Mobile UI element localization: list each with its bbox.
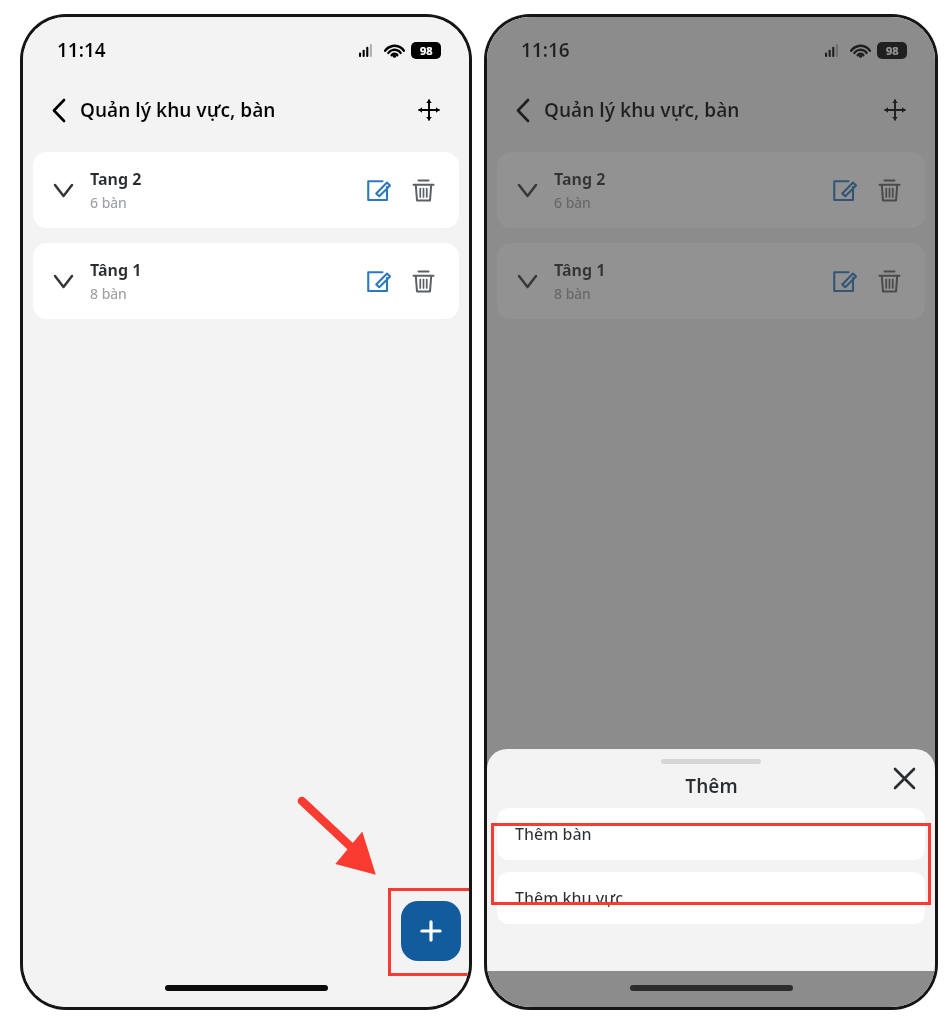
staticText: Thêm bàn xyxy=(515,823,592,845)
staticText: 8 bàn xyxy=(90,284,127,303)
button[interactable]: Quay lại xyxy=(501,88,545,132)
button[interactable]: Tang 2 xyxy=(33,152,459,228)
staticText: Tâng 1 xyxy=(554,259,606,281)
staticText: Quản lý khu vực, bàn xyxy=(80,97,276,123)
staticText: Tang 2 xyxy=(554,168,606,190)
button[interactable]: Tang 2 xyxy=(497,152,925,228)
staticText: 6 bàn xyxy=(554,193,591,212)
button[interactable]: Đóng xyxy=(887,761,921,795)
staticText: Quản lý khu vực, bàn xyxy=(544,97,740,123)
button[interactable]: Sửa xyxy=(821,259,865,303)
button[interactable]: Xoá xyxy=(867,168,911,212)
button[interactable]: Thêm khu vực xyxy=(497,872,925,924)
button[interactable]: Tâng 1 xyxy=(497,243,925,319)
staticText: Thêm khu vực xyxy=(515,887,624,909)
staticText: 11:14 xyxy=(57,37,106,63)
staticText: 6 bàn xyxy=(90,193,127,212)
button[interactable]: Quay lại xyxy=(37,88,81,132)
button[interactable]: Sửa xyxy=(355,168,399,212)
staticText: 98 xyxy=(420,43,433,58)
staticText: Tâng 1 xyxy=(90,259,142,281)
button[interactable]: Sửa xyxy=(821,168,865,212)
button[interactable]: Thêm xyxy=(401,901,461,961)
staticText: 98 xyxy=(886,43,899,58)
button[interactable]: Sắp xếp xyxy=(407,88,451,132)
button[interactable]: Xoá xyxy=(401,168,445,212)
button[interactable]: Sửa xyxy=(355,259,399,303)
staticText: Tang 2 xyxy=(90,168,142,190)
button[interactable]: Thêm bàn xyxy=(497,808,925,860)
button[interactable]: Xoá xyxy=(867,259,911,303)
button[interactable]: Xoá xyxy=(401,259,445,303)
staticText: 8 bàn xyxy=(554,284,591,303)
staticText: Thêm xyxy=(685,773,738,799)
button[interactable]: Tâng 1 xyxy=(33,243,459,319)
staticText: 11:16 xyxy=(521,37,570,63)
button[interactable]: Sắp xếp xyxy=(873,88,917,132)
